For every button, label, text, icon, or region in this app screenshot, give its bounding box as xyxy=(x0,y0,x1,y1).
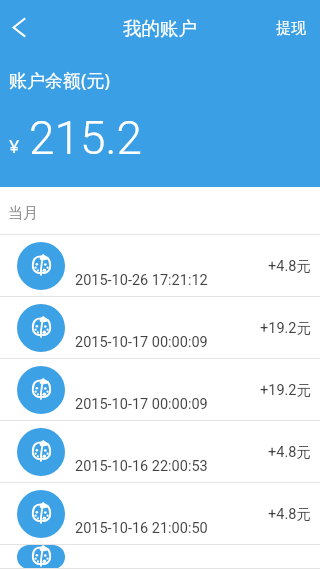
staticText: 2015-10-17 00:00:09 xyxy=(75,396,208,413)
button[interactable]: +4.8元 xyxy=(0,421,320,483)
staticText: +4.8元 xyxy=(268,257,311,275)
staticText: 2015-10-17 00:00:09 xyxy=(75,334,208,351)
staticText: 账户余额(元) xyxy=(9,68,110,93)
staticText: 当月 xyxy=(8,204,38,223)
staticText: 2015-10-16 22:00:53 xyxy=(75,458,208,475)
button[interactable]: +4.8元 xyxy=(0,545,320,569)
staticText: +4.8元 xyxy=(268,505,311,523)
staticText: 提现 xyxy=(276,19,306,38)
staticText: 215.2 xyxy=(29,111,143,165)
staticText: 2015-10-26 17:21:12 xyxy=(75,272,208,289)
staticText: +19.2元 xyxy=(260,381,311,399)
staticText: ¥ xyxy=(9,134,20,159)
staticText: +4.8元 xyxy=(268,443,311,461)
button[interactable]: +4.8元 xyxy=(0,483,320,545)
staticText: +4.8元 xyxy=(268,567,311,569)
staticText: 我的账户 xyxy=(123,17,197,40)
button[interactable]: +4.8元 xyxy=(0,235,320,297)
staticText: +19.2元 xyxy=(260,319,311,337)
button[interactable]: Back xyxy=(1,7,37,47)
button[interactable]: +19.2元 xyxy=(0,359,320,421)
button[interactable]: 提现 xyxy=(262,7,320,50)
staticText: 2015-10-16 21:00:50 xyxy=(75,520,208,537)
button[interactable]: +19.2元 xyxy=(0,297,320,359)
